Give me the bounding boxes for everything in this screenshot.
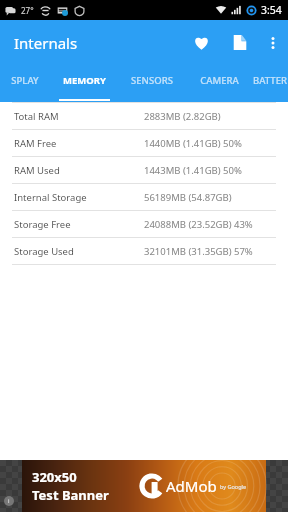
staticText: 24088MB (23.52GB) 43%: [144, 218, 253, 231]
staticText: 56189MB (54.87GB): [144, 191, 232, 204]
button[interactable]: Storage Used: [0, 238, 288, 264]
staticText: 1443MB (1.41GB) 50%: [144, 164, 242, 177]
staticText: CAMERA: [200, 74, 239, 87]
staticText: Test Banner: [32, 486, 109, 504]
staticText: Internal Storage: [14, 191, 87, 204]
staticText: SENSORS: [131, 74, 173, 87]
staticText: i: [8, 497, 10, 505]
button[interactable]: BATTER: [252, 65, 288, 102]
staticText: Storage Used: [14, 245, 74, 258]
staticText: MEMORY: [63, 74, 106, 87]
staticText: Internals: [14, 33, 78, 53]
button[interactable]: SPLAY: [0, 65, 50, 102]
staticText: Storage Free: [14, 218, 71, 231]
button[interactable]: CAMERA: [186, 65, 252, 102]
button[interactable]: Storage Free: [0, 211, 288, 237]
staticText: AdMob: [166, 476, 217, 496]
staticText: Total RAM: [14, 110, 59, 123]
staticText: 3:54: [261, 3, 282, 17]
staticText: RAM Free: [14, 137, 57, 150]
staticText: by Google: [220, 483, 247, 490]
staticText: 2883MB (2.82GB): [144, 110, 221, 123]
staticText: SPLAY: [11, 74, 39, 87]
button[interactable]: Total RAM: [0, 103, 288, 129]
button[interactable]: SENSORS: [118, 65, 186, 102]
button[interactable]: Advertisement: [0, 460, 288, 512]
button[interactable]: More options: [258, 20, 288, 65]
staticText: 27°: [21, 5, 34, 16]
button[interactable]: RAM Free: [0, 130, 288, 156]
staticText: 1440MB (1.41GB) 50%: [144, 137, 242, 150]
button[interactable]: RAM Used: [0, 157, 288, 183]
staticText: BATTER: [253, 74, 287, 87]
staticText: 320x50: [32, 468, 77, 486]
button[interactable]: Document: [220, 20, 258, 65]
staticText: RAM Used: [14, 164, 60, 177]
button[interactable]: Favorite: [182, 20, 220, 65]
button[interactable]: MEMORY: [50, 65, 118, 102]
button[interactable]: Internal Storage: [0, 184, 288, 210]
staticText: 32101MB (31.35GB) 57%: [144, 245, 253, 258]
